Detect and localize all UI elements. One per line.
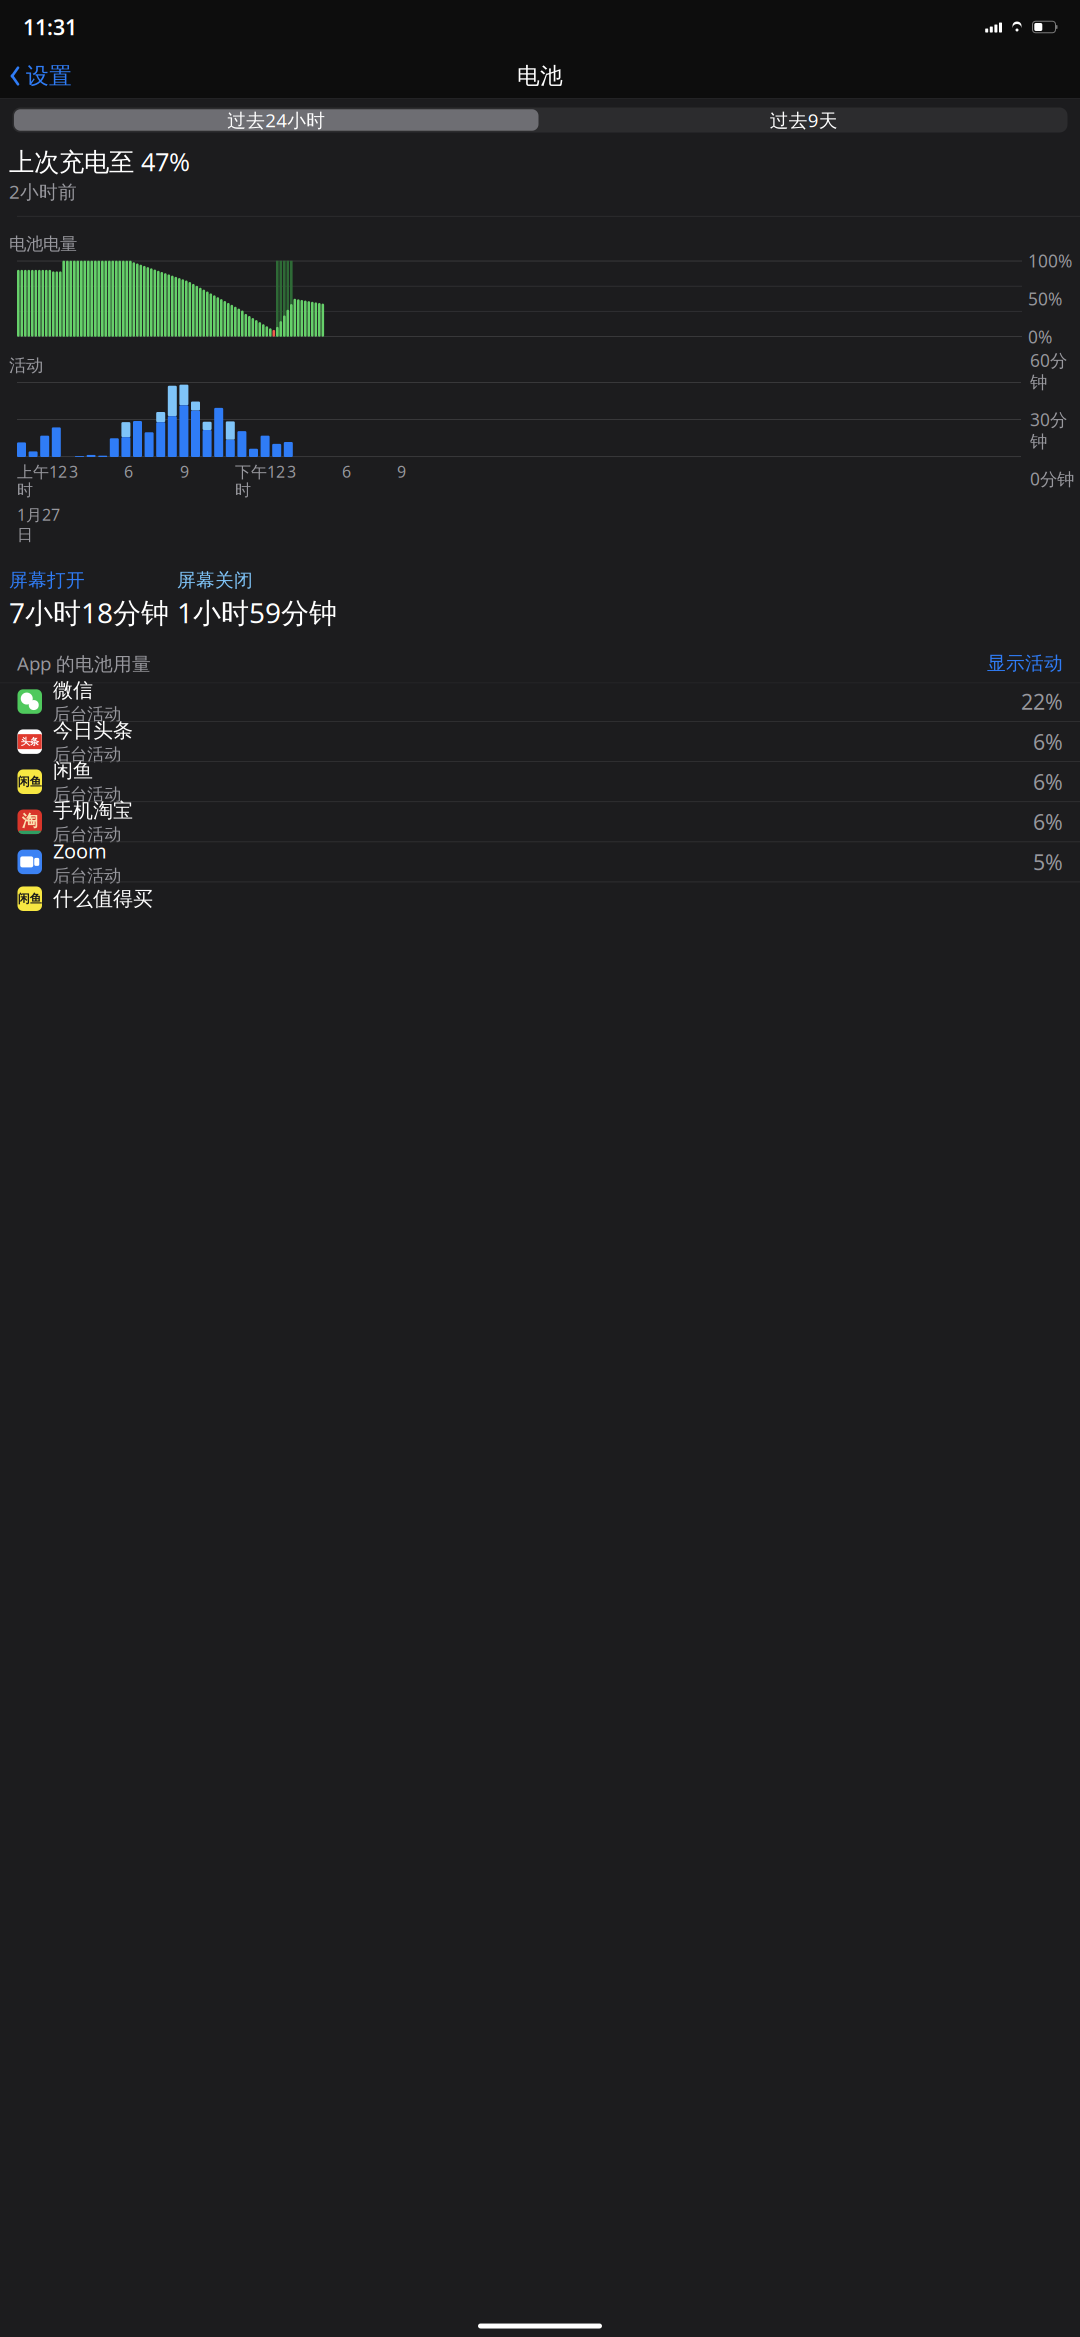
staticText: 后台活动 [53, 824, 121, 845]
staticText: 30分钟 [1030, 408, 1067, 452]
staticText: 6% [1033, 808, 1063, 836]
button[interactable]: 头条 [0, 723, 1080, 763]
staticText: 0分钟 [1030, 467, 1074, 490]
staticText: 100% [1028, 249, 1072, 272]
staticText: 1月27日 [17, 504, 60, 545]
staticText: 闲鱼 [53, 758, 93, 783]
staticText: Zoom [53, 837, 107, 864]
button[interactable]: 闲鱼 [0, 763, 1080, 804]
staticText: 后台活动 [53, 744, 121, 765]
staticText: 7小时18分钟 [9, 594, 169, 631]
staticText: 0% [1028, 325, 1052, 348]
staticText: 2小时前 [9, 179, 77, 204]
staticText: 微信 [53, 678, 93, 703]
staticText: 时 [235, 480, 251, 500]
staticText: App 的电池用量 [17, 651, 151, 676]
staticText: 6% [1033, 768, 1063, 796]
staticText: 过去9天 [770, 108, 838, 132]
staticText: 下午12 [235, 461, 285, 482]
staticText: 50% [1028, 287, 1062, 310]
staticText: 9 [397, 461, 406, 482]
staticText: 6 [342, 461, 351, 482]
staticText: 屏幕关闭 [177, 569, 253, 592]
staticText: 5% [1033, 848, 1063, 876]
staticText: 11:31 [23, 13, 77, 41]
button[interactable]: 淘 [0, 804, 1080, 844]
staticText: 过去24小时 [227, 108, 325, 132]
staticText: 闲鱼 [18, 774, 42, 789]
staticText: 闲鱼 [18, 891, 42, 906]
staticText: 活动 [9, 355, 43, 376]
staticText: 上次充电至 47% [9, 144, 190, 178]
staticText: 1小时59分钟 [177, 594, 337, 631]
staticText: 60分钟 [1030, 349, 1067, 393]
staticText: 什么值得买 [53, 886, 153, 911]
staticText: 后台活动 [53, 865, 121, 886]
button[interactable]: 显示活动 [987, 652, 1063, 675]
staticText: 屏幕打开 [9, 569, 85, 592]
staticText: 3 [287, 461, 296, 482]
staticText: 9 [180, 461, 189, 482]
staticText: 6% [1033, 727, 1063, 756]
button[interactable]: 过去24小时 [12, 108, 540, 132]
staticText: 3 [69, 461, 78, 482]
staticText: 22% [1021, 687, 1063, 716]
staticText: 手机淘宝 [53, 798, 133, 823]
button[interactable]: Zoom [0, 844, 1080, 884]
staticText: 后台活动 [53, 784, 121, 805]
staticText: 淘 [22, 811, 38, 831]
staticText: 今日头条 [53, 718, 133, 743]
button[interactable]: 过去9天 [540, 108, 1067, 132]
staticText: 后台活动 [53, 704, 121, 725]
button[interactable]: 微信 [0, 683, 1080, 723]
staticText: 头条 [21, 736, 39, 747]
staticText: 电池电量 [9, 233, 77, 255]
staticText: 6 [124, 461, 133, 482]
button[interactable]: 设置 [0, 58, 72, 94]
staticText: 电池 [517, 62, 563, 90]
staticText: 设置 [26, 62, 72, 90]
staticText: 时 [17, 480, 33, 500]
staticText: 显示活动 [987, 652, 1063, 675]
staticText: 上午12 [17, 461, 67, 482]
